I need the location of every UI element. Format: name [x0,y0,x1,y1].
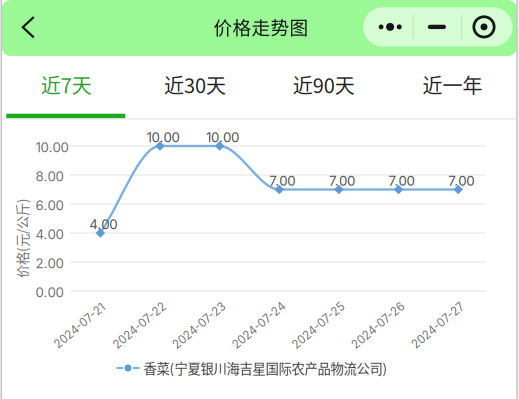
staticText: 4.00 [35,226,63,242]
button[interactable]: Close [461,7,513,47]
staticText: 近一年 [422,70,482,99]
staticText: 2024-07-21 [48,319,111,332]
staticText: 2024-07-23 [167,319,232,332]
staticText: 近7天 [41,70,92,99]
staticText: 2024-07-26 [346,319,411,332]
staticText: 价格(元/公斤) [0,228,62,248]
staticText: 8.00 [35,168,63,184]
staticText: 2024-07-27 [406,319,470,332]
staticText: 10.00 [35,139,68,155]
staticText: 2024-07-22 [107,319,172,332]
button[interactable]: 近一年 [388,58,517,119]
staticText: 7.00 [389,173,415,189]
staticText: 近30天 [164,70,226,99]
staticText: 2024-07-24 [226,319,291,332]
button[interactable]: Back [2,0,50,56]
staticText: 0.00 [35,284,63,300]
button[interactable]: 近90天 [259,58,388,119]
staticText: 10.00 [206,129,239,145]
staticText: 7.00 [269,173,295,189]
staticText: 6.00 [35,197,63,213]
staticText: 价格走势图 [214,13,309,40]
staticText: 7.00 [448,173,474,189]
staticText: 4.00 [89,216,117,232]
staticText: 7.00 [329,173,355,189]
staticText: 10.00 [146,129,179,145]
staticText: 2.00 [35,255,63,271]
button[interactable]: 近7天 [2,58,131,119]
button[interactable]: 近30天 [131,58,259,119]
staticText: 近90天 [293,70,355,99]
staticText: 2024-07-25 [286,319,351,332]
staticText: 香菜(宁夏银川海吉星国际农产品物流公司) [143,358,387,378]
button[interactable]: Minimize [413,7,461,47]
button[interactable]: More [363,7,413,47]
